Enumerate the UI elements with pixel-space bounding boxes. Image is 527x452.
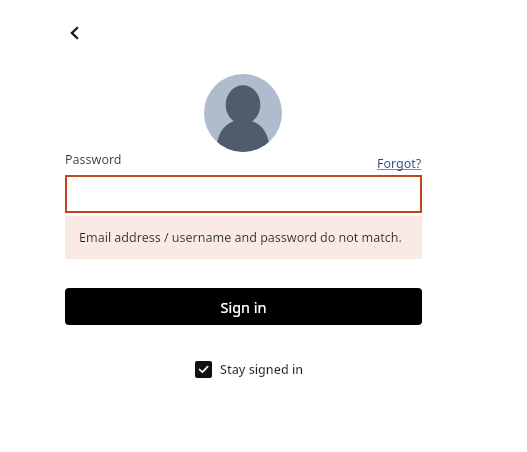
staticText: Sign in	[220, 297, 267, 317]
button[interactable]: Sign in	[65, 288, 422, 325]
button[interactable]: Stay signed in	[195, 361, 304, 378]
button[interactable]: Back	[58, 16, 92, 50]
button[interactable]: Password field	[65, 175, 422, 213]
staticText: Forgot?	[377, 155, 422, 172]
staticText: Stay signed in	[220, 361, 304, 378]
other: Profile picture	[204, 74, 282, 152]
staticText: Email address / username and password do…	[79, 229, 402, 246]
staticText: Password	[65, 151, 122, 168]
button[interactable]: Forgot?	[377, 155, 422, 172]
